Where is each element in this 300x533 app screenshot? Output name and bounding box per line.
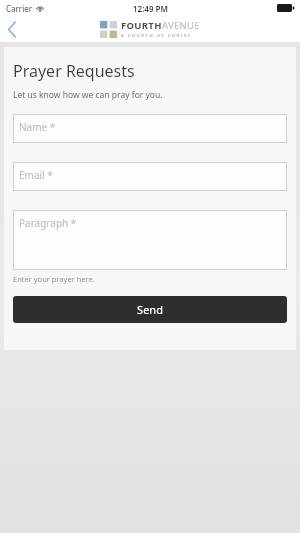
staticText: Send [137,302,163,317]
staticText: AVENUE [162,19,200,32]
staticText: 12:49 PM [133,3,168,14]
staticText: Email * [19,168,53,182]
staticText: Name * [19,120,56,134]
staticText: Enter your prayer here. [13,274,95,284]
staticText: Prayer Requests [13,60,135,82]
button[interactable]: Paragraph * [13,210,287,270]
staticText: FOURTH [121,19,162,32]
staticText: A CHURCH OF CHRIST [121,33,192,39]
staticText: Paragraph * [19,216,77,230]
staticText: Let us know how we can pray for you. [13,89,163,101]
button[interactable]: Send [13,296,287,323]
staticText: Carrier [6,3,33,14]
button[interactable]: Name * [13,114,287,143]
button[interactable]: Email * [13,162,287,191]
button[interactable]: Back [0,16,30,42]
